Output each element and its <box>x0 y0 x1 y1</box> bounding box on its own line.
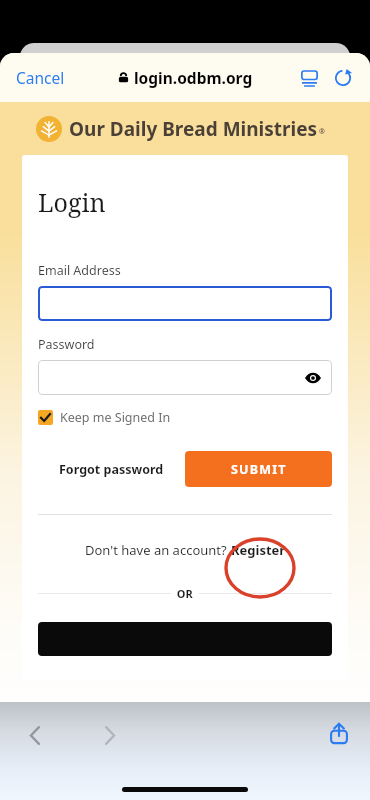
button[interactable]: Cancel <box>12 59 69 96</box>
staticText: Forgot password <box>59 461 164 478</box>
button[interactable]: Forgot password <box>38 451 185 487</box>
staticText: Password <box>38 336 95 353</box>
staticText: Our Daily Bread Ministries <box>69 116 318 142</box>
staticText: Cancel <box>16 67 65 88</box>
button[interactable]: Reader view <box>292 61 326 95</box>
button[interactable]: Share <box>316 710 362 756</box>
staticText: ® <box>319 127 325 137</box>
staticText: Keep me Signed In <box>60 409 171 426</box>
staticText: Register <box>231 541 286 559</box>
button[interactable]: Back <box>12 712 58 758</box>
staticText: Don't have an account? <box>85 541 231 559</box>
button[interactable]: Register <box>231 541 286 559</box>
staticText: Login <box>38 185 106 219</box>
button[interactable]: Password input <box>38 360 332 395</box>
button[interactable]: SUBMIT <box>185 451 332 487</box>
button[interactable]: Email Address input <box>38 286 332 321</box>
button[interactable]: Keep me Signed In <box>38 407 171 428</box>
staticText: Email Address <box>38 262 121 279</box>
button[interactable]: Show password <box>300 365 326 391</box>
staticText: login.odbm.org <box>134 67 253 88</box>
button[interactable]: Sign in with Apple <box>38 622 332 656</box>
button[interactable]: Reload <box>326 61 360 95</box>
button[interactable]: Forward <box>86 712 132 758</box>
staticText: SUBMIT <box>231 461 287 478</box>
staticText: OR <box>171 586 199 601</box>
